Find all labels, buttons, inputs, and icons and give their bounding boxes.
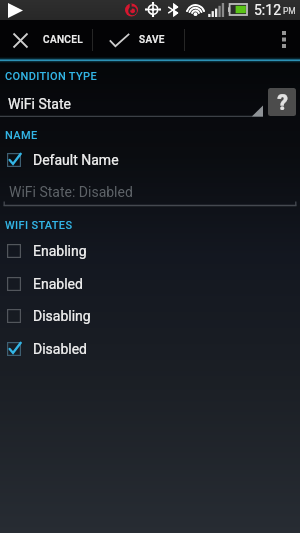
button[interactable]: Enabling (0, 238, 300, 264)
staticText: CONDITION TYPE (5, 70, 97, 83)
staticText: 5:12 (254, 2, 281, 18)
staticText: Default Name (33, 152, 119, 168)
staticText: Enabling (33, 243, 87, 259)
staticText: NAME (5, 129, 38, 142)
button[interactable]: Disabling (0, 303, 300, 329)
button[interactable]: More options (267, 20, 300, 59)
button[interactable]: Enabled (0, 271, 300, 297)
staticText: Disabling (33, 308, 91, 324)
button[interactable]: SAVE (93, 20, 185, 59)
staticText: WIFI STATES (5, 219, 73, 232)
button[interactable]: Help (268, 88, 296, 116)
staticText: SAVE (139, 34, 165, 46)
staticText: Disabled (33, 341, 88, 357)
button[interactable]: WiFi State (0, 96, 300, 118)
button[interactable]: CANCEL (0, 20, 92, 59)
staticText: ? (277, 91, 288, 116)
button[interactable]: Default Name (0, 147, 300, 173)
staticText: CANCEL (43, 34, 83, 46)
staticText: Enabled (33, 276, 83, 292)
staticText: PM (283, 6, 296, 16)
button[interactable]: Disabled (0, 336, 300, 362)
staticText: WiFi State: Disabled (9, 184, 133, 200)
staticText: WiFi State (8, 96, 71, 112)
